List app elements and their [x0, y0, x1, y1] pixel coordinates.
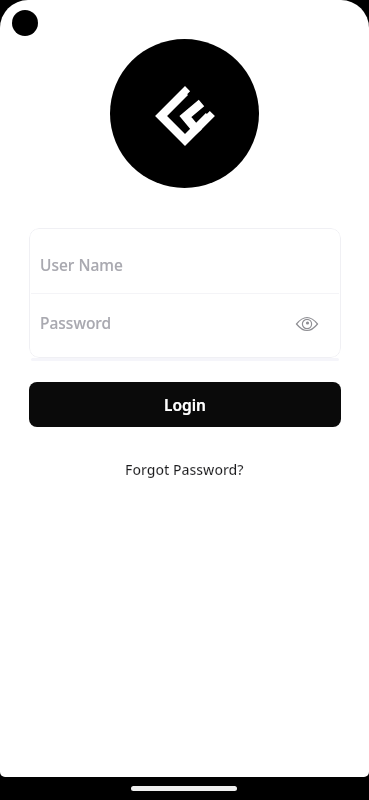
- button[interactable]: [295, 312, 319, 336]
- button[interactable]: Password: [29, 294, 341, 358]
- staticText: Password: [40, 312, 112, 333]
- button[interactable]: Login: [29, 382, 341, 427]
- staticText: User Name: [40, 254, 123, 275]
- button[interactable]: Forgot Password?: [125, 460, 244, 479]
- staticText: Forgot Password?: [125, 460, 244, 479]
- staticText: Login: [164, 394, 207, 415]
- button[interactable]: User Name: [29, 228, 341, 293]
